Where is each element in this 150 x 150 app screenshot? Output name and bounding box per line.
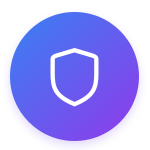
button[interactable]: Security xyxy=(0,0,150,150)
